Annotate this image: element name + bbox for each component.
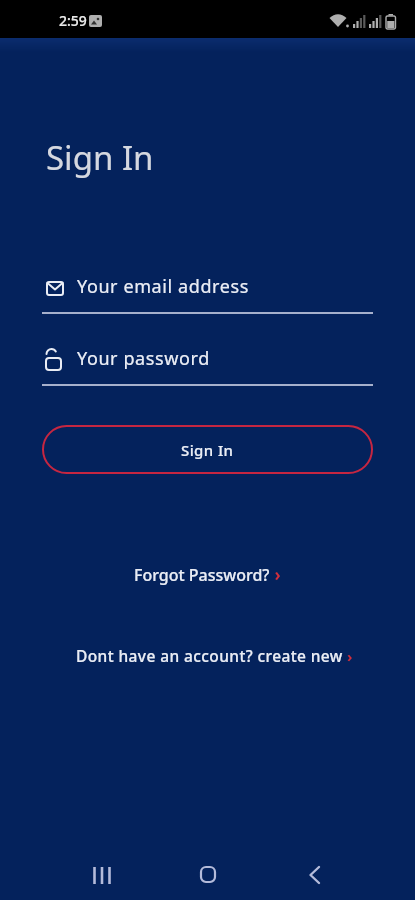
button[interactable]: Your password <box>42 342 373 386</box>
staticText: Your password <box>77 346 210 371</box>
staticText: Dont have an account? create new <box>76 645 343 666</box>
staticText: Sign In <box>46 135 154 180</box>
staticText: Your email address <box>77 274 249 299</box>
button[interactable]: Dont have an account? create new <box>7 645 415 666</box>
button[interactable] <box>191 857 225 891</box>
staticText: Forgot Password? <box>134 564 270 586</box>
staticText: Sign In <box>181 440 234 460</box>
staticText: › <box>270 563 281 586</box>
staticText: › <box>343 646 353 666</box>
button[interactable]: Sign In <box>42 425 373 474</box>
staticText: 2:59 <box>59 11 87 30</box>
button[interactable] <box>298 857 332 891</box>
button[interactable]: Forgot Password? <box>0 563 415 586</box>
button[interactable] <box>85 858 119 892</box>
button[interactable]: Your email address <box>42 270 373 314</box>
